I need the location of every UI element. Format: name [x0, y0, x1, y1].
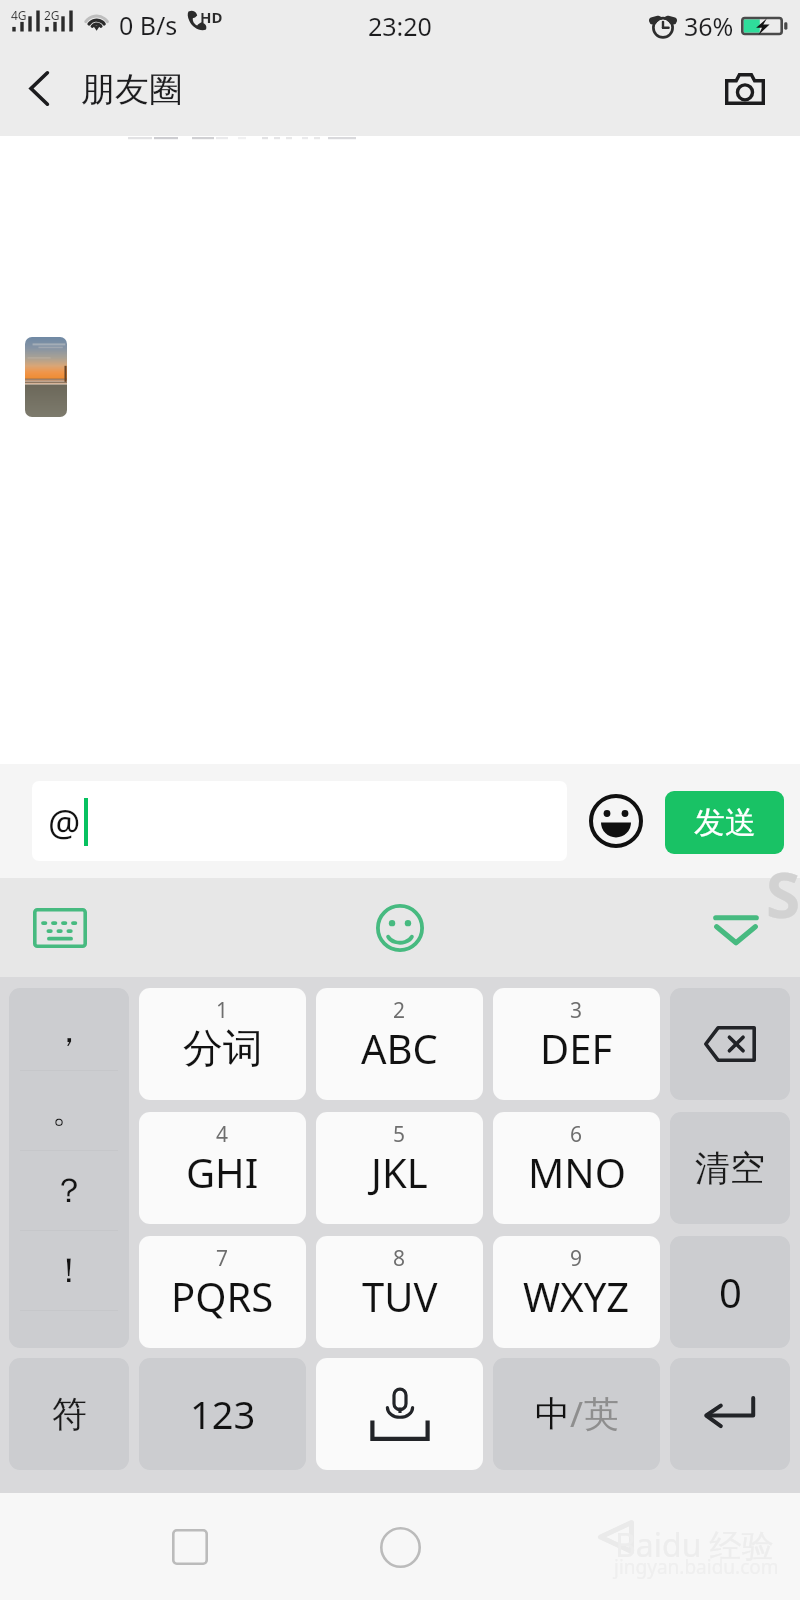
staticText: ABC [361, 1021, 438, 1075]
staticText: MNO [528, 1145, 626, 1199]
staticText: 中 [535, 1392, 570, 1436]
button[interactable]: @ [32, 781, 567, 861]
staticText: 3 [570, 996, 583, 1025]
staticText: 2 [393, 996, 406, 1025]
button[interactable]: 中 [493, 1358, 660, 1470]
staticText: / [570, 1390, 584, 1438]
button[interactable]: 符 [9, 1358, 129, 1470]
staticText: JKL [371, 1145, 428, 1199]
staticText: 9 [570, 1244, 583, 1273]
button[interactable]: Voice input [316, 1358, 483, 1470]
staticText: ， [52, 1009, 86, 1052]
button[interactable]: Hide keyboard [698, 890, 774, 966]
button[interactable]: Backspace [670, 988, 790, 1100]
button[interactable]: Enter [670, 1358, 790, 1470]
button[interactable]: Back [8, 54, 70, 122]
staticText: 2G [44, 7, 60, 23]
staticText: 6 [570, 1120, 583, 1149]
staticText: HD [200, 7, 223, 27]
button[interactable]: 发送 [665, 791, 784, 854]
button[interactable]: Emoji panel [362, 890, 438, 966]
staticText: 。 [52, 1089, 86, 1132]
staticText: Baidu 经验 [615, 1523, 774, 1567]
button[interactable]: 9 [493, 1236, 660, 1348]
button[interactable]: 1 [139, 988, 306, 1100]
staticText: DEF [540, 1021, 613, 1075]
staticText: 英 [584, 1392, 619, 1436]
button[interactable]: Keyboard [22, 890, 98, 966]
staticText: 4 [216, 1120, 229, 1149]
staticText: ？ [52, 1169, 86, 1212]
staticText: 分词 [183, 1023, 263, 1073]
button[interactable]: 清空 [670, 1112, 790, 1224]
button[interactable]: Emoji [586, 791, 646, 851]
button[interactable]: Home [364, 1511, 436, 1583]
staticText: 1 [216, 996, 229, 1025]
button[interactable]: 4 [139, 1112, 306, 1224]
button[interactable]: 123 [139, 1358, 306, 1470]
staticText: TUV [362, 1269, 438, 1323]
button[interactable]: Camera [712, 55, 778, 123]
staticText: GHI [186, 1145, 259, 1199]
staticText: 0 [719, 1265, 742, 1319]
button[interactable]: 0 [670, 1236, 790, 1348]
staticText: PQRS [171, 1269, 274, 1323]
button[interactable]: 6 [493, 1112, 660, 1224]
button[interactable]: 8 [316, 1236, 483, 1348]
staticText: 符 [52, 1392, 87, 1436]
staticText: 5 [393, 1120, 406, 1149]
staticText: 23:20 [368, 9, 432, 43]
button[interactable]: 7 [139, 1236, 306, 1348]
staticText: 7 [216, 1244, 229, 1273]
staticText: ！ [52, 1249, 86, 1292]
staticText: 0 B/s [119, 8, 178, 42]
staticText: S [766, 852, 800, 936]
staticText: WXYZ [523, 1269, 630, 1323]
staticText: 清空 [695, 1146, 765, 1190]
button[interactable]: 3 [493, 988, 660, 1100]
staticText: 36% [684, 9, 734, 43]
staticText: @ [48, 798, 81, 847]
button[interactable]: ， [9, 988, 129, 1348]
staticText: 8 [393, 1244, 406, 1273]
staticText: 朋友圈 [81, 68, 183, 111]
button[interactable]: 2 [316, 988, 483, 1100]
staticText: 4G [11, 7, 27, 23]
staticText: 123 [190, 1388, 256, 1440]
button[interactable]: 5 [316, 1112, 483, 1224]
button[interactable]: Recents [154, 1511, 226, 1583]
staticText: 发送 [694, 803, 756, 842]
staticText: jingyan.baidu.com [614, 1554, 779, 1580]
